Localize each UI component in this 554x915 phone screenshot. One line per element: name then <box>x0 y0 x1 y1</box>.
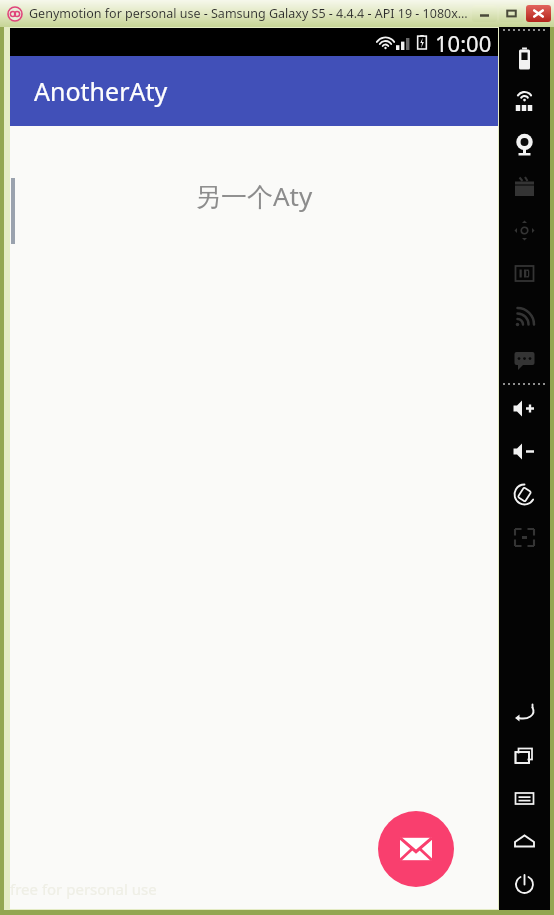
staticText: AnotherAty <box>34 74 168 108</box>
button[interactable]: Window button <box>472 5 497 22</box>
button[interactable]: Identifiers <box>499 252 550 295</box>
button[interactable]: Back <box>499 691 550 734</box>
button[interactable]: Recents <box>499 734 550 777</box>
staticText: 10:00 <box>435 28 492 56</box>
button[interactable]: Battery <box>499 37 550 80</box>
button[interactable]: Screenshot <box>499 516 550 559</box>
button[interactable]: GPS <box>499 80 550 123</box>
button[interactable]: Menu <box>499 777 550 820</box>
button[interactable]: Network <box>499 295 550 338</box>
button[interactable]: Camera <box>499 123 550 166</box>
button[interactable]: Compose email <box>378 811 454 887</box>
staticText: free for personal use <box>10 879 157 899</box>
button[interactable]: Volume up <box>499 387 550 430</box>
button[interactable]: Video record <box>499 166 550 209</box>
button[interactable]: Home <box>499 820 550 863</box>
button[interactable]: Volume down <box>499 430 550 473</box>
staticText: 另一个Aty <box>195 178 313 214</box>
button[interactable]: Window button <box>499 5 524 22</box>
button[interactable]: Close <box>526 5 551 22</box>
button[interactable]: Joystick <box>499 209 550 252</box>
button[interactable]: SMS <box>499 338 550 381</box>
button[interactable]: Rotate <box>499 473 550 516</box>
staticText: Genymotion for personal use - Samsung Ga… <box>29 5 468 22</box>
button[interactable]: Power <box>499 863 550 906</box>
